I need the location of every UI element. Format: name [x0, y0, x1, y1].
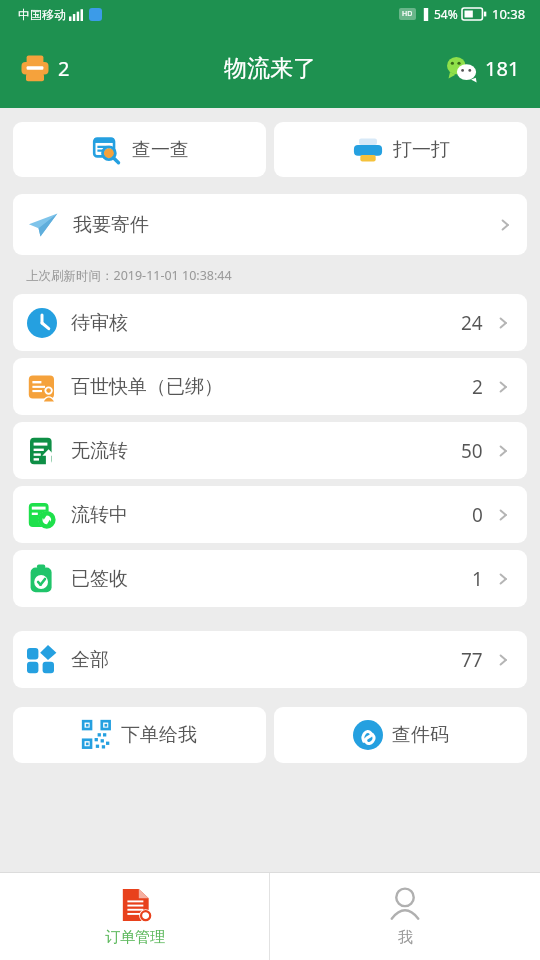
- staticText: 我要寄件: [73, 213, 149, 237]
- button[interactable]: 我要寄件: [13, 194, 527, 255]
- staticText: 已签收: [71, 567, 128, 591]
- staticText: 10:38: [492, 5, 526, 23]
- staticText: 0: [472, 502, 483, 528]
- button[interactable]: 全部: [13, 631, 527, 688]
- other: 微信: [447, 57, 477, 81]
- staticText: 77: [461, 647, 483, 673]
- staticText: 打一打: [393, 138, 450, 162]
- staticText: 全部: [71, 648, 109, 672]
- button[interactable]: 微信: [443, 51, 524, 86]
- staticText: 百世快单（已绑）: [71, 375, 223, 399]
- staticText: 我: [398, 928, 413, 947]
- staticText: 2: [472, 374, 483, 400]
- staticText: 24: [461, 310, 483, 336]
- staticText: 查一查: [132, 138, 189, 162]
- staticText: 待审核: [71, 311, 128, 335]
- button[interactable]: 查一查: [13, 122, 266, 177]
- button[interactable]: 订单管理: [0, 873, 269, 960]
- staticText: 50: [461, 438, 483, 464]
- button[interactable]: 我: [270, 873, 540, 960]
- button[interactable]: 打一打: [274, 122, 527, 177]
- button[interactable]: 下单给我: [13, 707, 266, 763]
- staticText: 无流转: [71, 439, 128, 463]
- staticText: 查件码: [392, 723, 449, 747]
- staticText: 2: [58, 55, 70, 82]
- button[interactable]: 无流转: [13, 422, 527, 479]
- staticText: 54%: [434, 6, 458, 22]
- staticText: 上次刷新时间：2019-11-01 10:38:44: [26, 267, 232, 284]
- button[interactable]: 待审核: [13, 294, 527, 351]
- staticText: 物流来了: [224, 54, 316, 83]
- staticText: HD: [402, 9, 413, 19]
- button[interactable]: 百世快单（已绑）: [13, 358, 527, 415]
- staticText: 下单给我: [121, 723, 197, 747]
- button[interactable]: 已签收: [13, 550, 527, 607]
- staticText: 流转中: [71, 503, 128, 527]
- button[interactable]: 打印机: [16, 49, 74, 87]
- staticText: 181: [485, 55, 520, 82]
- button[interactable]: 流转中: [13, 486, 527, 543]
- staticText: 中国移动: [18, 7, 66, 22]
- staticText: 1: [472, 566, 483, 592]
- staticText: 订单管理: [105, 928, 165, 947]
- button[interactable]: 查件码: [274, 707, 527, 763]
- other: 打印机: [20, 53, 50, 83]
